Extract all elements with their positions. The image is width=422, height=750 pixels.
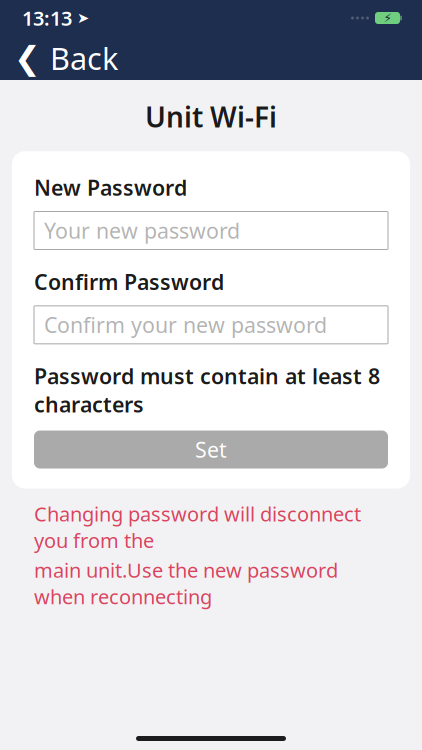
staticText: ❮	[14, 40, 41, 76]
staticText: Confirm Password	[34, 267, 224, 296]
staticText: 13:13	[22, 5, 72, 31]
staticText: New Password	[34, 173, 187, 201]
staticText: Back	[50, 38, 118, 78]
staticText: main unit.Use the new password when reco…	[34, 557, 338, 610]
staticText: Confirm your new password	[44, 311, 327, 339]
staticText: Changing password will disconnect you fr…	[34, 500, 361, 554]
button[interactable]: ❮	[0, 32, 130, 84]
staticText: Set	[195, 435, 227, 464]
staticText: ➤	[77, 10, 89, 26]
staticText: ⚡︎	[383, 11, 391, 25]
staticText: Your new password	[44, 216, 240, 245]
staticText: Password must contain at least 8 charact…	[34, 362, 380, 418]
staticText: Unit Wi-Fi	[145, 98, 277, 135]
button[interactable]: Set	[34, 430, 388, 468]
